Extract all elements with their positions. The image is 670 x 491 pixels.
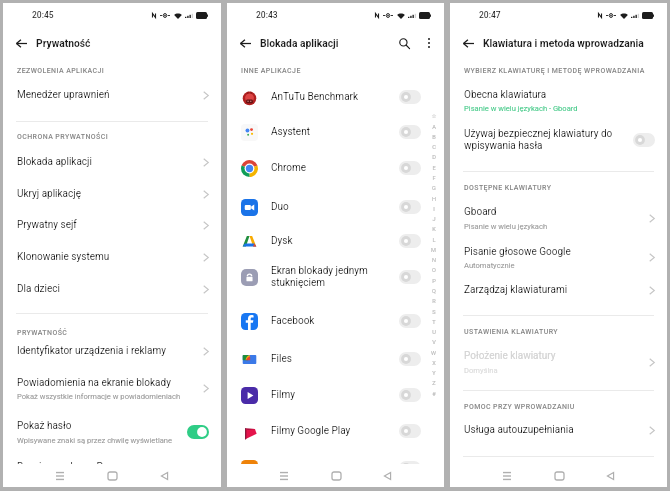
- staticText: Asystent: [271, 126, 399, 138]
- button[interactable]: Toggle: [399, 388, 421, 402]
- button[interactable]: Home: [326, 466, 346, 486]
- staticText: X: [432, 360, 436, 367]
- staticText: DOSTĘPNE KLAWIATURY: [464, 184, 552, 192]
- staticText: U: [432, 329, 436, 336]
- button[interactable]: Dysk: [227, 228, 444, 254]
- staticText: J: [432, 216, 436, 223]
- staticText: #: [432, 391, 436, 398]
- staticText: Blokada aplikacji: [17, 156, 203, 168]
- button[interactable]: Obecna klawiatura: [450, 83, 667, 118]
- button[interactable]: Menedżer uprawnień: [3, 82, 221, 108]
- staticText: 20:45: [32, 10, 54, 20]
- button[interactable]: Położenie klawiatury: [450, 344, 667, 380]
- button[interactable]: Recents: [274, 466, 294, 486]
- staticText: Pokaż wszystkie informacje w powiadomien…: [17, 392, 181, 401]
- button[interactable]: Usługa autouzupełniania: [450, 417, 667, 443]
- button[interactable]: Dla dzieci: [3, 276, 221, 302]
- staticText: Menedżer uprawnień: [17, 89, 203, 101]
- button[interactable]: Toggle: [399, 161, 421, 175]
- staticText: Klonowanie systemu: [17, 251, 203, 263]
- button[interactable]: Identyfikator urządzenia i reklamy: [3, 338, 221, 364]
- staticText: T: [432, 319, 436, 326]
- button[interactable]: Toggle: [399, 352, 421, 366]
- staticText: Bezpieczne łącze P...: [17, 461, 110, 473]
- staticText: INNE APLIKACJE: [241, 67, 301, 75]
- staticText: [271, 462, 399, 474]
- button[interactable]: Home: [549, 466, 569, 486]
- staticText: D: [432, 154, 436, 161]
- button[interactable]: AnTuTu Benchmark: [227, 84, 444, 110]
- button[interactable]: Files: [227, 346, 444, 372]
- button[interactable]: Chrome: [227, 155, 444, 181]
- staticText: C: [432, 144, 436, 151]
- button[interactable]: Recents: [497, 466, 517, 486]
- staticText: H: [432, 196, 436, 203]
- staticText: Usługa autouzupełniania: [464, 424, 649, 436]
- staticText: M: [431, 247, 436, 254]
- button[interactable]: Toggle: [633, 133, 655, 147]
- button[interactable]: Search: [393, 32, 415, 54]
- button[interactable]: Filmy Google Play: [227, 418, 444, 444]
- button[interactable]: Toggle: [399, 314, 421, 328]
- button[interactable]: Asystent: [227, 119, 444, 145]
- button[interactable]: Pokaż hasło: [3, 414, 221, 450]
- staticText: 20:47: [479, 10, 501, 20]
- button[interactable]: More options: [419, 33, 439, 53]
- staticText: Pokaż hasło: [17, 420, 72, 432]
- button[interactable]: Toggle: [399, 234, 421, 248]
- staticText: Powiadomienia na ekranie blokady: [17, 377, 171, 389]
- button[interactable]: Toggle: [399, 200, 421, 214]
- button[interactable]: Zarządzaj klawiaturami: [450, 277, 667, 303]
- button[interactable]: Toggle: [227, 455, 444, 481]
- button[interactable]: Back: [154, 466, 174, 486]
- staticText: W: [431, 350, 436, 357]
- staticText: Gboard: [464, 206, 497, 218]
- button[interactable]: Toggle: [399, 424, 421, 438]
- button[interactable]: Recents: [50, 466, 70, 486]
- button[interactable]: Używaj bezpiecznej klawiatury do wpisywa…: [450, 122, 667, 158]
- button[interactable]: Facebook: [227, 308, 444, 334]
- button[interactable]: Gboard: [450, 200, 667, 236]
- button[interactable]: Home: [102, 466, 122, 486]
- button[interactable]: Toggle: [399, 125, 421, 139]
- button[interactable]: Back: [377, 466, 397, 486]
- staticText: Files: [271, 353, 399, 365]
- button[interactable]: Filmy: [227, 382, 444, 408]
- staticText: Prywatność: [36, 37, 216, 49]
- staticText: Identyfikator urządzenia i reklamy: [17, 345, 203, 357]
- staticText: Facebook: [271, 315, 399, 327]
- staticText: S: [432, 309, 436, 316]
- button[interactable]: Back: [12, 32, 30, 54]
- staticText: PRYWATNOŚĆ: [17, 329, 68, 337]
- staticText: Y: [432, 370, 436, 377]
- staticText: Q: [432, 288, 436, 295]
- staticText: A: [432, 124, 436, 131]
- button[interactable]: Pisanie głosowe Google: [450, 240, 667, 275]
- button[interactable]: Prywatny sejf: [3, 212, 221, 238]
- button[interactable]: Klonowanie systemu: [3, 244, 221, 270]
- staticText: E: [432, 165, 436, 172]
- staticText: OCHRONA PRYWATNOŚCI: [17, 133, 109, 141]
- staticText: Domyślna: [464, 366, 498, 375]
- staticText: Pisanie w wielu językach: [464, 222, 548, 231]
- staticText: WYBIERZ KLAWIATURĘ I METODĘ WPROWADZANIA: [464, 67, 645, 75]
- button[interactable]: Blokada aplikacji: [3, 149, 221, 175]
- staticText: V: [432, 339, 436, 346]
- button[interactable]: Back: [600, 466, 620, 486]
- button[interactable]: Back: [459, 32, 477, 54]
- button[interactable]: Ekran blokady jednym stuknięciem: [227, 260, 444, 294]
- button[interactable]: Toggle: [399, 270, 421, 284]
- button[interactable]: Back: [236, 32, 254, 54]
- staticText: ZEZWOLENIA APLIKACJI: [17, 67, 105, 75]
- button[interactable]: Toggle: [399, 90, 421, 104]
- button[interactable]: Duo: [227, 194, 444, 220]
- staticText: R: [432, 298, 436, 305]
- button[interactable]: Powiadomienia na ekranie blokady: [3, 371, 221, 406]
- staticText: G: [432, 185, 436, 192]
- staticText: Obecna klawiatura: [464, 89, 547, 101]
- button[interactable]: Ukryj aplikację: [3, 181, 221, 207]
- button[interactable]: Toggle: [399, 461, 421, 475]
- staticText: Automatycznie: [464, 261, 515, 270]
- staticText: Używaj bezpiecznej klawiatury do wpisywa…: [464, 128, 633, 152]
- button[interactable]: Toggle: [187, 425, 209, 439]
